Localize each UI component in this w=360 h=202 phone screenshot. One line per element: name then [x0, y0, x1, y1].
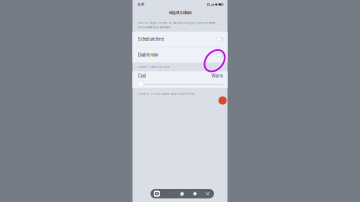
staticText: Turn on Night Shield to reduce blue ligh… [138, 21, 217, 24]
button[interactable]: Screenshot [150, 189, 163, 198]
staticText: COLOR TEMPERATURE [138, 65, 170, 68]
button[interactable]: Marker [176, 189, 189, 198]
staticText: thus preventing eye strain. [138, 26, 172, 29]
button[interactable]: Enable now [132, 47, 227, 62]
staticText: 9:41 [138, 3, 144, 6]
staticText: Cool [138, 73, 146, 78]
button[interactable]: Close [201, 189, 214, 198]
staticText: Enable now [138, 52, 158, 57]
button[interactable]: Schedule time [132, 32, 227, 47]
staticText: Schedule time [138, 37, 164, 42]
staticText: Adjust to fit your desired eye protectio… [138, 92, 196, 95]
staticText: Night Shield [169, 10, 191, 15]
button[interactable]: Eraser [189, 189, 201, 198]
button[interactable]: Draw [163, 189, 176, 198]
staticText: Warm [212, 73, 224, 78]
button[interactable]: Add [218, 96, 227, 105]
